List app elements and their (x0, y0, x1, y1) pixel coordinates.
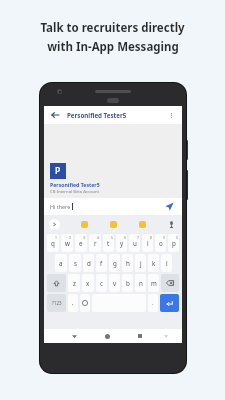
button[interactable]: x (82, 274, 94, 292)
button[interactable]: h (122, 254, 133, 272)
button[interactable]: Hide keyboard (161, 331, 171, 341)
staticText: 6 (124, 235, 126, 240)
button[interactable]: a (55, 254, 67, 272)
button[interactable]: c (96, 274, 107, 292)
button[interactable]: Emoji (107, 218, 119, 230)
staticText: m (151, 279, 157, 287)
staticText: 2 (69, 235, 71, 240)
staticText: P (55, 165, 61, 177)
staticText: o (159, 239, 163, 247)
button[interactable]: Back (68, 330, 80, 342)
button[interactable]: p (168, 234, 179, 252)
staticText: f (100, 259, 103, 267)
staticText: j (140, 259, 142, 267)
staticText: t (107, 239, 110, 247)
staticText: e (79, 239, 83, 247)
button[interactable]: s (69, 254, 81, 272)
button[interactable]: Home (101, 330, 113, 342)
button[interactable]: r (89, 234, 101, 252)
button[interactable]: e (75, 234, 87, 252)
staticText: h (126, 259, 130, 267)
button[interactable]: d (83, 254, 94, 272)
staticText: s (74, 259, 77, 267)
staticText: with In-App Messaging (47, 39, 179, 55)
staticText: k (152, 259, 156, 267)
button[interactable]: z (68, 274, 80, 292)
staticText: ?123 (52, 300, 62, 306)
staticText: . (152, 299, 154, 307)
staticText: , (72, 299, 74, 307)
staticText: q (51, 239, 55, 247)
staticText: y (120, 239, 124, 247)
button[interactable]: g (109, 254, 120, 272)
button[interactable]: Shift (47, 274, 66, 292)
button[interactable]: u (129, 234, 140, 252)
staticText: g (113, 259, 117, 267)
button[interactable]: n (135, 274, 146, 292)
staticText: u (133, 239, 137, 247)
button[interactable]: w (61, 234, 73, 252)
button[interactable]: Back (49, 109, 61, 121)
staticText: Personified Tester5 (50, 181, 100, 188)
button[interactable]: More options (165, 109, 177, 121)
button[interactable]: i (142, 234, 153, 252)
staticText: l (166, 259, 168, 267)
button[interactable]: Comma (68, 294, 78, 312)
button[interactable]: Voice input (165, 218, 177, 230)
button[interactable]: Emoji keyboard (80, 294, 90, 312)
button[interactable]: f (96, 254, 107, 272)
staticText: d (87, 259, 91, 267)
button[interactable]: Symbols (47, 294, 66, 312)
staticText: n (139, 279, 143, 287)
staticText: x (86, 279, 90, 287)
button[interactable]: q (47, 234, 59, 252)
button[interactable]: t (103, 234, 114, 252)
staticText: 9 (163, 235, 165, 240)
staticText: i (147, 239, 149, 247)
button[interactable]: k (148, 254, 159, 272)
staticText: w (65, 239, 70, 247)
button[interactable]: Expand toolbar (49, 219, 60, 230)
staticText: Talk to recruiters directly (40, 20, 185, 36)
staticText: Personified Tester5 (67, 111, 127, 119)
button[interactable]: Emoji (78, 218, 90, 230)
staticText: 1 (55, 235, 57, 240)
staticText: b (126, 279, 130, 287)
button[interactable]: l (161, 254, 172, 272)
staticText: a (59, 259, 63, 267)
staticText: 8 (150, 235, 152, 240)
staticText: 0 (176, 235, 178, 240)
staticText: p (172, 239, 176, 247)
staticText: c (100, 279, 103, 287)
staticText: 7 (137, 235, 139, 240)
staticText: 5 (111, 235, 113, 240)
button[interactable]: Backspace (161, 274, 179, 292)
button[interactable]: Enter (160, 294, 179, 312)
button[interactable]: Send (163, 200, 176, 213)
staticText: Hi there (50, 203, 71, 210)
button[interactable]: o (155, 234, 166, 252)
button[interactable]: b (122, 274, 133, 292)
button[interactable]: j (135, 254, 146, 272)
button[interactable]: m (148, 274, 159, 292)
staticText: r (94, 239, 97, 247)
button[interactable]: v (109, 274, 120, 292)
staticText: v (113, 279, 117, 287)
staticText: 4 (97, 235, 99, 240)
staticText: 3 (83, 235, 85, 240)
button[interactable]: Period (148, 294, 158, 312)
staticText: z (73, 279, 76, 287)
button[interactable]: Recents (134, 330, 146, 342)
staticText: CB Internal Beta Account (50, 189, 100, 195)
button[interactable]: y (116, 234, 127, 252)
button[interactable]: Emoji (136, 218, 148, 230)
